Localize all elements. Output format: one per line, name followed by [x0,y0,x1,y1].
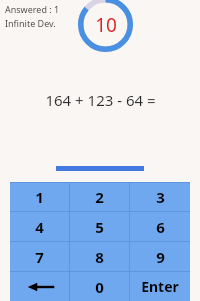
staticText: 8 [95,247,104,267]
staticText: 9 [156,247,165,267]
staticText: 0 [95,277,104,297]
staticText: Infinite Dev. [5,17,56,29]
button[interactable]: 1 [10,183,69,211]
button[interactable]: 0 [70,272,129,301]
staticText: 3 [156,187,165,207]
button[interactable]: 7 [10,242,69,271]
button[interactable]: Enter [130,272,190,301]
staticText: 4 [35,217,44,237]
staticText: 1 [35,187,44,207]
staticText: 7 [35,247,44,267]
staticText: 6 [156,217,165,237]
staticText: Answered : 1 [5,3,60,15]
button[interactable]: 5 [70,212,129,241]
staticText: Enter [141,277,179,296]
staticText: 164 + 123 - 64 = [45,90,156,110]
button[interactable]: 4 [10,212,69,241]
staticText: 2 [95,187,104,207]
button[interactable]: Backspace [10,272,69,301]
button[interactable]: 9 [130,242,190,271]
button[interactable]: 2 [70,183,129,211]
staticText: 10 [95,12,117,38]
button[interactable]: 3 [130,183,190,211]
staticText: 5 [95,217,104,237]
button[interactable]: 6 [130,212,190,241]
button[interactable]: 8 [70,242,129,271]
